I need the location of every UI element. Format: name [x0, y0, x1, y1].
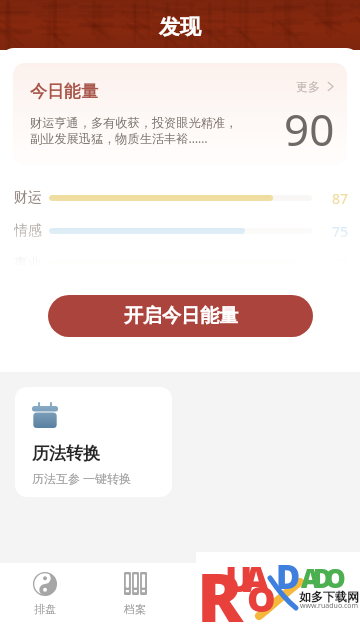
staticText: 历法互参 一键转换 [32, 470, 132, 486]
staticText: O [247, 574, 276, 623]
staticText: 档案 [124, 602, 146, 616]
staticText: 如多下载网 [299, 589, 359, 604]
staticText: A [243, 554, 270, 603]
staticText: D [276, 554, 301, 599]
staticText: 更多 [296, 79, 320, 94]
staticText: 87 [328, 189, 348, 208]
staticText: A [301, 560, 320, 595]
button[interactable]: 开启今日能量 [48, 295, 313, 337]
staticText: 情感 [14, 222, 49, 240]
staticText: 财运亨通，多有收获，投资眼光精准， [30, 115, 238, 130]
staticText: U [225, 554, 253, 603]
staticText: 开启今日能量 [124, 304, 238, 328]
button[interactable]: 档案 [90, 563, 180, 625]
button[interactable]: 更多 [296, 79, 335, 94]
button[interactable]: 排盘 [0, 563, 90, 625]
button[interactable]: 历法转换 [15, 387, 172, 497]
staticText: 今日能量 [30, 81, 98, 102]
staticText: O [325, 560, 346, 595]
staticText: www.ruaduo.com [300, 601, 359, 611]
staticText: 星盘 [214, 602, 236, 616]
staticText: 75 [328, 222, 348, 241]
staticText: 财运 [14, 189, 49, 207]
staticText: 副业发展迅猛，物质生活丰裕…… [30, 130, 208, 147]
other: 档案 [124, 572, 147, 595]
button[interactable]: 我的 [270, 563, 360, 625]
button[interactable]: 星盘 [180, 563, 270, 625]
other: 排盘 [33, 572, 57, 596]
staticText: 发现 [159, 14, 201, 40]
staticText: D [313, 560, 333, 595]
staticText: R [197, 549, 244, 625]
staticText: 90 [284, 99, 335, 159]
staticText: 排盘 [34, 602, 56, 616]
staticText: 历法转换 [32, 443, 100, 464]
staticText: 我的 [304, 602, 326, 616]
